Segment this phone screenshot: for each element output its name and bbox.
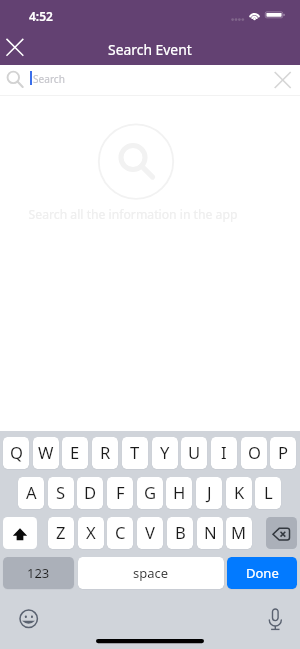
- staticText: E: [70, 441, 80, 464]
- staticText: W: [38, 441, 54, 464]
- button[interactable]: K: [226, 477, 252, 509]
- staticText: Done: [246, 564, 279, 582]
- button[interactable]: Z: [48, 517, 74, 549]
- staticText: Y: [160, 441, 170, 464]
- button[interactable]: S: [48, 477, 74, 509]
- button[interactable]: X: [78, 517, 104, 549]
- staticText: K: [234, 481, 245, 504]
- button[interactable]: C: [107, 517, 133, 549]
- staticText: C: [115, 521, 126, 544]
- button[interactable]: R: [92, 437, 118, 469]
- button[interactable]: Close: [0, 33, 36, 65]
- button[interactable]: D: [77, 477, 103, 509]
- button[interactable]: V: [137, 517, 163, 549]
- staticText: P: [278, 441, 289, 464]
- button[interactable]: A: [18, 477, 44, 509]
- staticText: Z: [56, 521, 66, 544]
- staticText: 123: [27, 564, 50, 582]
- button[interactable]: F: [107, 477, 133, 509]
- staticText: H: [173, 481, 186, 504]
- button[interactable]: G: [137, 477, 163, 509]
- button[interactable]: T: [122, 437, 148, 469]
- button[interactable]: Clear search: [270, 65, 300, 95]
- staticText: Search: [33, 72, 65, 86]
- staticText: A: [26, 481, 37, 504]
- staticText: N: [204, 521, 217, 544]
- staticText: X: [86, 521, 96, 544]
- staticText: F: [116, 481, 125, 504]
- button[interactable]: O: [241, 437, 267, 469]
- staticText: D: [84, 481, 97, 504]
- staticText: Search all the information in the app: [0, 206, 283, 223]
- staticText: Search Event: [108, 40, 192, 59]
- button[interactable]: H: [166, 477, 192, 509]
- button[interactable]: space: [78, 557, 224, 589]
- staticText: O: [248, 441, 261, 464]
- staticText: V: [145, 521, 155, 544]
- staticText: I: [221, 441, 227, 464]
- staticText: space: [133, 564, 169, 582]
- button[interactable]: N: [197, 517, 223, 549]
- staticText: J: [207, 481, 212, 504]
- staticText: L: [264, 481, 273, 504]
- staticText: M: [231, 521, 247, 544]
- button[interactable]: P: [270, 437, 296, 469]
- button[interactable]: Done: [227, 557, 297, 589]
- staticText: T: [130, 441, 140, 464]
- button[interactable]: W: [33, 437, 59, 469]
- staticText: B: [175, 521, 186, 544]
- button[interactable]: Backspace: [266, 517, 297, 549]
- button[interactable]: I: [211, 437, 237, 469]
- button[interactable]: Q: [3, 437, 29, 469]
- button[interactable]: Shift: [3, 517, 37, 549]
- button[interactable]: 123: [3, 557, 74, 589]
- button[interactable]: J: [196, 477, 222, 509]
- staticText: 4:52: [29, 8, 53, 24]
- staticText: S: [56, 481, 66, 504]
- staticText: U: [188, 441, 201, 464]
- button[interactable]: M: [226, 517, 252, 549]
- button[interactable]: U: [181, 437, 207, 469]
- staticText: R: [100, 441, 111, 464]
- staticText: G: [144, 481, 157, 504]
- button[interactable]: L: [255, 477, 281, 509]
- button[interactable]: E: [62, 437, 88, 469]
- button[interactable]: B: [167, 517, 193, 549]
- button[interactable]: Y: [152, 437, 178, 469]
- staticText: Q: [10, 441, 23, 464]
